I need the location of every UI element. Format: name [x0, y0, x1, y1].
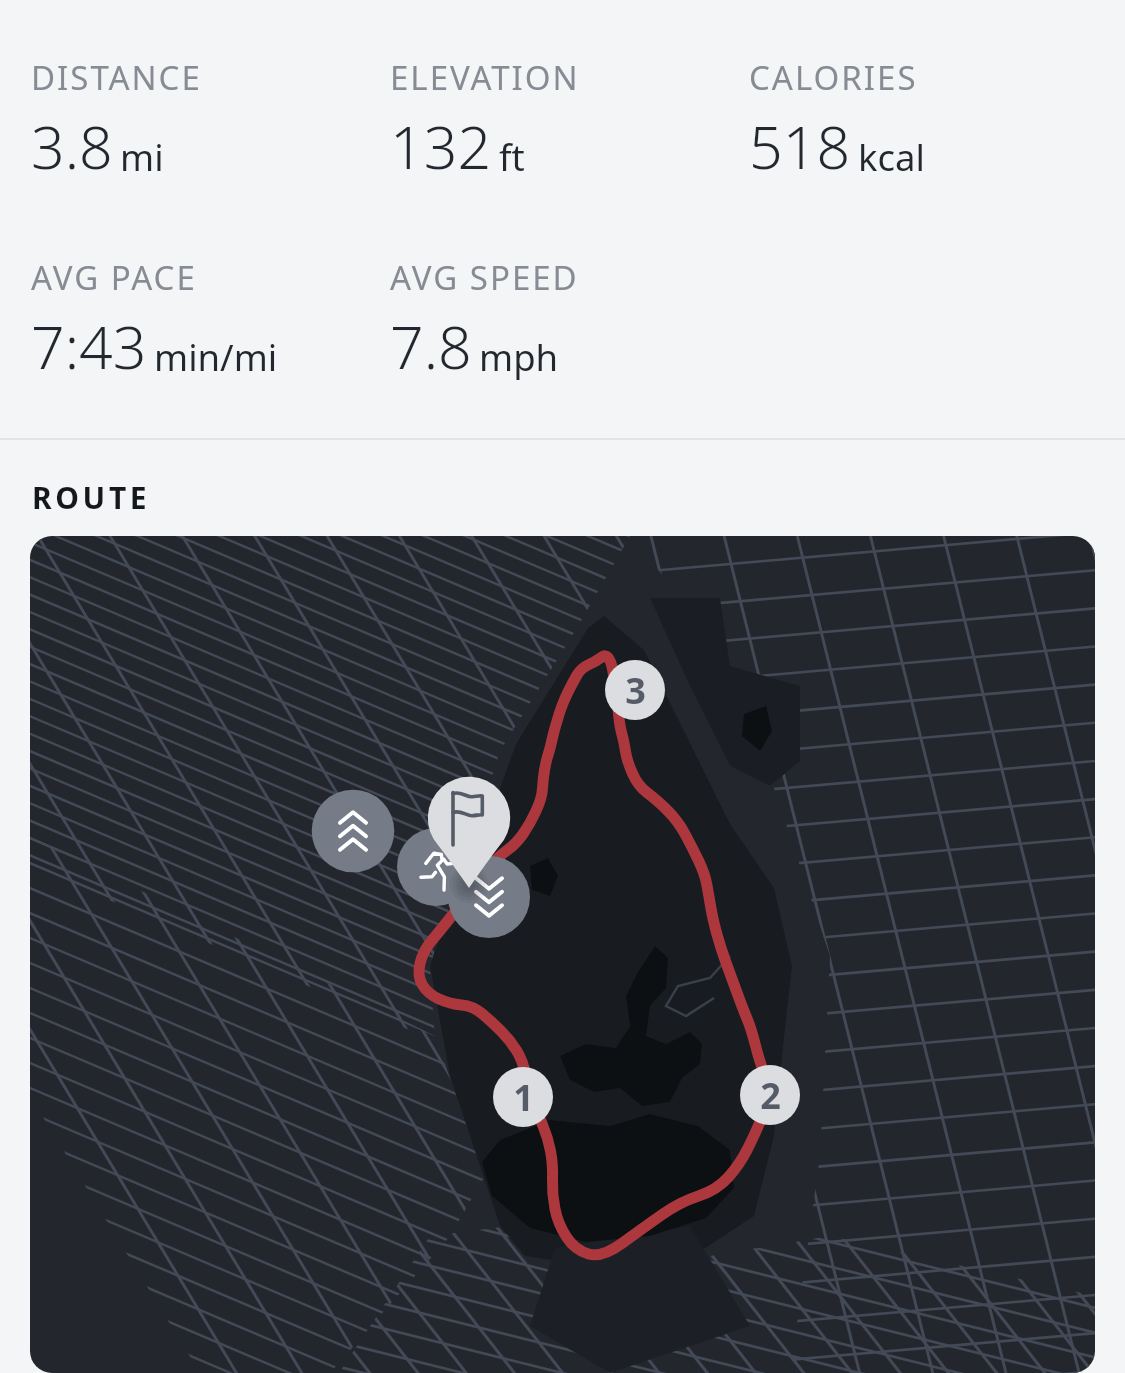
- staticText: 1: [513, 1073, 534, 1122]
- staticText: 7:43: [31, 306, 147, 386]
- staticText: mi: [120, 132, 164, 182]
- staticText: 518: [749, 106, 851, 186]
- staticText: 3.8: [31, 106, 113, 186]
- staticText: 3: [625, 666, 646, 715]
- staticText: ft: [499, 132, 525, 182]
- staticText: 7.8: [390, 306, 472, 386]
- staticText: ELEVATION: [390, 55, 580, 100]
- staticText: CALORIES: [749, 55, 918, 100]
- staticText: 132: [390, 106, 492, 186]
- staticText: AVG PACE: [31, 255, 197, 300]
- staticText: ROUTE: [32, 477, 151, 518]
- button[interactable]: 3: [605, 660, 665, 720]
- button[interactable]: 1: [493, 1067, 553, 1127]
- staticText: 2: [760, 1071, 781, 1120]
- button[interactable]: 2: [740, 1065, 800, 1125]
- staticText: min/mi: [154, 332, 278, 382]
- staticText: AVG SPEED: [390, 255, 579, 300]
- button[interactable]: Route map: [30, 536, 1095, 1373]
- staticText: kcal: [858, 132, 925, 182]
- staticText: mph: [479, 332, 559, 382]
- staticText: DISTANCE: [31, 55, 202, 100]
